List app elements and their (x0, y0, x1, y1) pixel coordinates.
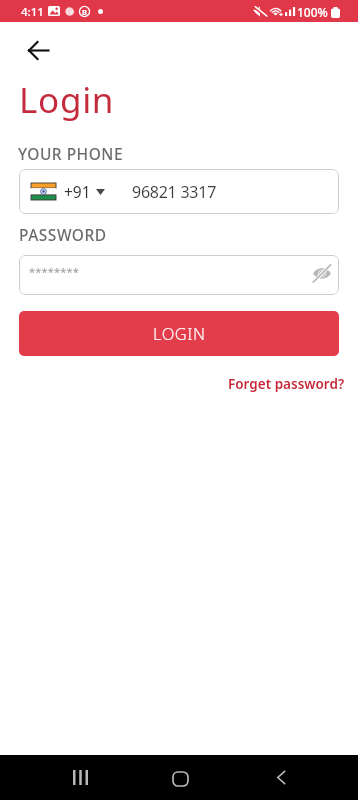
button[interactable]: Show password (305, 256, 339, 290)
staticText: LOGIN (153, 322, 206, 344)
staticText: ******** (29, 264, 80, 279)
staticText: B (82, 7, 87, 17)
button[interactable]: Recent apps (56, 755, 104, 800)
button[interactable]: Forget password? (226, 373, 347, 395)
button[interactable]: LOGIN (19, 311, 339, 356)
staticText: Forget password? (228, 375, 345, 393)
button[interactable]: Home (156, 756, 204, 800)
staticText: Login (19, 76, 115, 124)
staticText: PASSWORD (19, 224, 107, 245)
staticText: YOUR PHONE (18, 143, 124, 164)
button[interactable]: ******** (19, 255, 339, 295)
staticText: +91 (64, 181, 91, 202)
button[interactable]: Back (14, 26, 62, 74)
staticText: 4:11 (21, 4, 44, 20)
staticText: 100% (297, 4, 328, 20)
button[interactable]: +91 (19, 169, 339, 214)
button[interactable]: Back (257, 755, 305, 800)
staticText: 96821 3317 (132, 181, 217, 203)
